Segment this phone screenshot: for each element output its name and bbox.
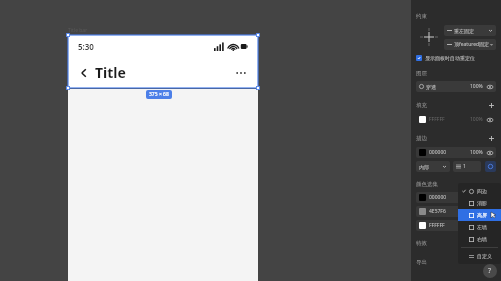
- button[interactable]: Back: [77, 66, 91, 80]
- staticText: 图层: [416, 70, 427, 77]
- staticText: 内部: [419, 164, 429, 170]
- staticText: 约束: [416, 13, 427, 20]
- button[interactable]: 消影: [458, 197, 501, 209]
- staticText: 5:30: [78, 41, 94, 52]
- staticText: 特效: [416, 240, 427, 247]
- staticText: 显示面板时自动重定位: [425, 55, 475, 61]
- staticText: 顶featured固定: [454, 41, 490, 48]
- staticText: 右墙: [477, 236, 487, 242]
- staticText: 导出: [416, 259, 427, 266]
- staticText: 000000: [429, 194, 447, 201]
- button[interactable]: 右墙: [458, 233, 501, 245]
- staticText: 100%: [470, 116, 483, 123]
- staticText: 自定义: [477, 253, 492, 259]
- staticText: 消影: [477, 200, 487, 206]
- staticText: ?: [488, 266, 492, 276]
- button[interactable]: 内部: [416, 161, 450, 172]
- staticText: 4E57F6: [429, 208, 446, 215]
- button[interactable]: Add 描边: [487, 134, 496, 143]
- button[interactable]: 5:30: [68, 35, 258, 88]
- staticText: 四边: [477, 188, 487, 194]
- staticText: 描边: [416, 135, 427, 142]
- button[interactable]: 自定义: [458, 250, 501, 262]
- button[interactable]: 高屏: [458, 209, 501, 221]
- button[interactable]: 四边: [458, 185, 501, 197]
- staticText: Title: [95, 63, 126, 82]
- staticText: Title bar: [68, 27, 88, 34]
- staticText: 高屏: [477, 212, 487, 218]
- button[interactable]: 穿透: [416, 81, 496, 92]
- button[interactable]: 000000: [416, 147, 496, 158]
- staticText: 100%: [470, 149, 483, 156]
- staticText: 000000: [429, 149, 447, 156]
- button[interactable]: 4E57F6: [416, 206, 496, 217]
- staticText: 左墙: [477, 224, 487, 230]
- staticText: 重左固定: [454, 28, 474, 34]
- button[interactable]: 1: [453, 161, 481, 172]
- staticText: 穿透: [426, 84, 436, 90]
- staticText: 100%: [470, 83, 483, 90]
- button[interactable]: Add 填充: [487, 101, 496, 110]
- button[interactable]: 000000: [416, 192, 496, 203]
- staticText: FFFFFF: [429, 222, 445, 229]
- button[interactable]: FFFFFF: [416, 114, 496, 125]
- button[interactable]: FFFFFF: [416, 220, 496, 231]
- button[interactable]: 左墙: [458, 221, 501, 233]
- staticText: 颜色选集: [416, 181, 438, 188]
- button[interactable]: 显示面板时自动重定位: [416, 55, 496, 61]
- button[interactable]: Stroke options: [485, 161, 496, 172]
- button[interactable]: 重左固定: [444, 25, 496, 36]
- button[interactable]: Help: [483, 264, 497, 278]
- button[interactable]: More options: [233, 65, 249, 81]
- button[interactable]: 顶featured固定: [444, 39, 496, 50]
- staticText: FFFFFF: [429, 116, 445, 123]
- staticText: 375 × 68: [149, 91, 169, 98]
- staticText: 1: [463, 163, 466, 170]
- staticText: 填充: [416, 102, 427, 109]
